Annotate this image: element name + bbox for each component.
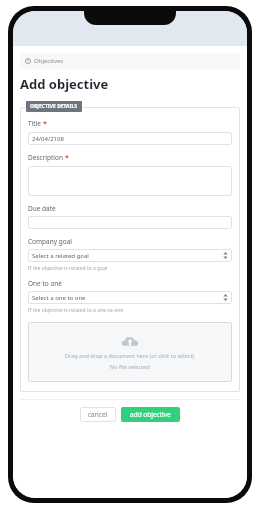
button[interactable]: add objective bbox=[121, 407, 180, 422]
staticText: * bbox=[65, 153, 69, 163]
button[interactable]: Objectives bbox=[20, 53, 240, 69]
button[interactable] bbox=[28, 216, 232, 229]
staticText: Add objective bbox=[20, 75, 109, 93]
staticText: Due date bbox=[28, 204, 56, 213]
staticText: 24/04/2108 bbox=[32, 135, 64, 143]
staticText: * bbox=[43, 119, 47, 129]
staticText: Description bbox=[28, 153, 63, 162]
staticText: Select a related goal bbox=[32, 252, 89, 260]
staticText: Objectives bbox=[34, 57, 64, 65]
button[interactable] bbox=[28, 166, 232, 196]
staticText: Company goal bbox=[28, 237, 73, 246]
staticText: OBJECTIVE DETAILS bbox=[30, 103, 78, 110]
button[interactable]: Upload a document bbox=[28, 322, 232, 382]
staticText: cancel bbox=[88, 410, 108, 419]
staticText: add objective bbox=[130, 410, 171, 419]
button[interactable]: Select a one to one bbox=[28, 291, 232, 304]
staticText: One to one bbox=[28, 279, 63, 288]
button[interactable]: 24/04/2108 bbox=[28, 132, 232, 145]
staticText: No file selected bbox=[110, 363, 150, 370]
staticText: Title bbox=[28, 119, 41, 128]
staticText: Select a one to one bbox=[32, 294, 86, 302]
staticText: Drag and drop a document here (or click … bbox=[65, 352, 195, 359]
button[interactable]: cancel bbox=[80, 407, 116, 422]
staticText: If the objective is related to a goal bbox=[28, 265, 108, 272]
staticText: If the objective is related to a one-to-… bbox=[28, 307, 124, 314]
button[interactable]: Select a related goal bbox=[28, 249, 232, 262]
